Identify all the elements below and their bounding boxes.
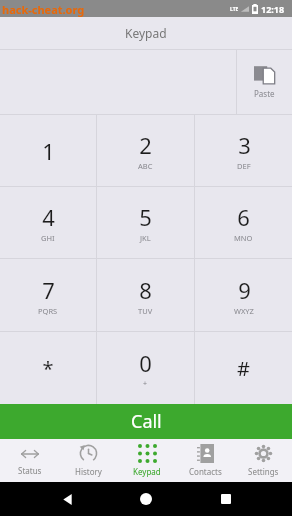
staticText: JKL — [140, 233, 151, 243]
button[interactable]: 6 — [195, 187, 292, 258]
button[interactable]: Status — [0, 439, 59, 482]
button[interactable]: 0 — [97, 332, 194, 404]
staticText: Keypad — [125, 25, 167, 41]
staticText: + — [143, 379, 148, 389]
staticText: TUV — [138, 306, 153, 316]
button[interactable]: Recents — [213, 486, 239, 512]
staticText: 9 — [238, 275, 251, 305]
button[interactable]: Settings — [234, 439, 292, 482]
button[interactable]: Keypad — [118, 439, 176, 482]
staticText: 6 — [237, 202, 250, 232]
staticText: WXYZ — [234, 306, 254, 316]
staticText: # — [237, 355, 250, 382]
button[interactable]: 3 — [195, 115, 292, 186]
staticText: History — [75, 466, 102, 477]
button[interactable]: 9 — [195, 259, 292, 331]
staticText: 2 — [139, 130, 152, 160]
staticText: Call — [131, 409, 162, 434]
button[interactable]: 8 — [97, 259, 194, 331]
button[interactable]: 4 — [0, 187, 96, 258]
staticText: 12:18 — [261, 3, 285, 15]
button[interactable]: 1 — [0, 115, 96, 186]
staticText: 4 — [42, 202, 55, 232]
staticText: LTE — [230, 6, 239, 13]
button[interactable]: 7 — [0, 259, 96, 331]
staticText: DEF — [237, 161, 251, 171]
staticText: Settings — [248, 466, 279, 477]
staticText: 8 — [139, 275, 152, 305]
button[interactable]: 5 — [97, 187, 194, 258]
button[interactable]: Back — [54, 486, 80, 512]
staticText: 0 — [139, 348, 152, 378]
staticText: Status — [18, 465, 42, 476]
button[interactable]: History — [59, 439, 118, 482]
staticText: 1 — [42, 136, 55, 166]
button[interactable]: Contacts — [176, 439, 234, 482]
button[interactable]: Paste — [237, 50, 292, 114]
staticText: Contacts — [189, 466, 222, 477]
staticText: 5 — [139, 202, 152, 232]
staticText: Paste — [254, 88, 275, 99]
staticText: 3 — [238, 130, 251, 160]
staticText: MNO — [234, 233, 253, 243]
staticText: 7 — [42, 275, 55, 305]
button[interactable]: Call — [0, 404, 292, 439]
staticText: PQRS — [38, 306, 58, 316]
staticText: hack-cheat.org — [2, 2, 85, 17]
staticText: ABC — [138, 161, 153, 171]
button[interactable]: Home — [133, 486, 159, 512]
button[interactable]: 2 — [97, 115, 194, 186]
button[interactable]: # — [195, 332, 292, 404]
staticText: * — [42, 355, 54, 382]
button[interactable]: * — [0, 332, 96, 404]
staticText: GHI — [41, 233, 55, 243]
staticText: Keypad — [133, 466, 161, 477]
